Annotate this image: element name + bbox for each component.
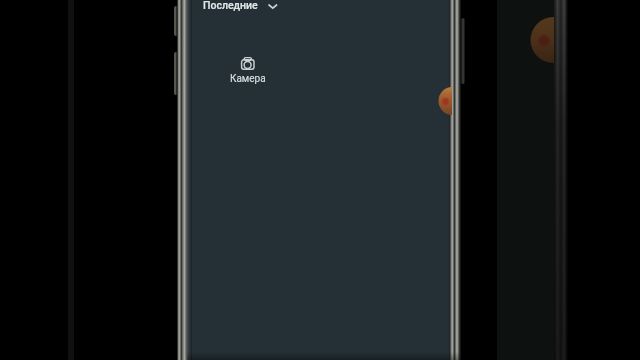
button[interactable]: Последние — [203, 0, 278, 12]
staticText: Последние — [203, 0, 258, 11]
button[interactable]: Камера — [224, 50, 272, 88]
staticText: Камера — [230, 73, 266, 85]
